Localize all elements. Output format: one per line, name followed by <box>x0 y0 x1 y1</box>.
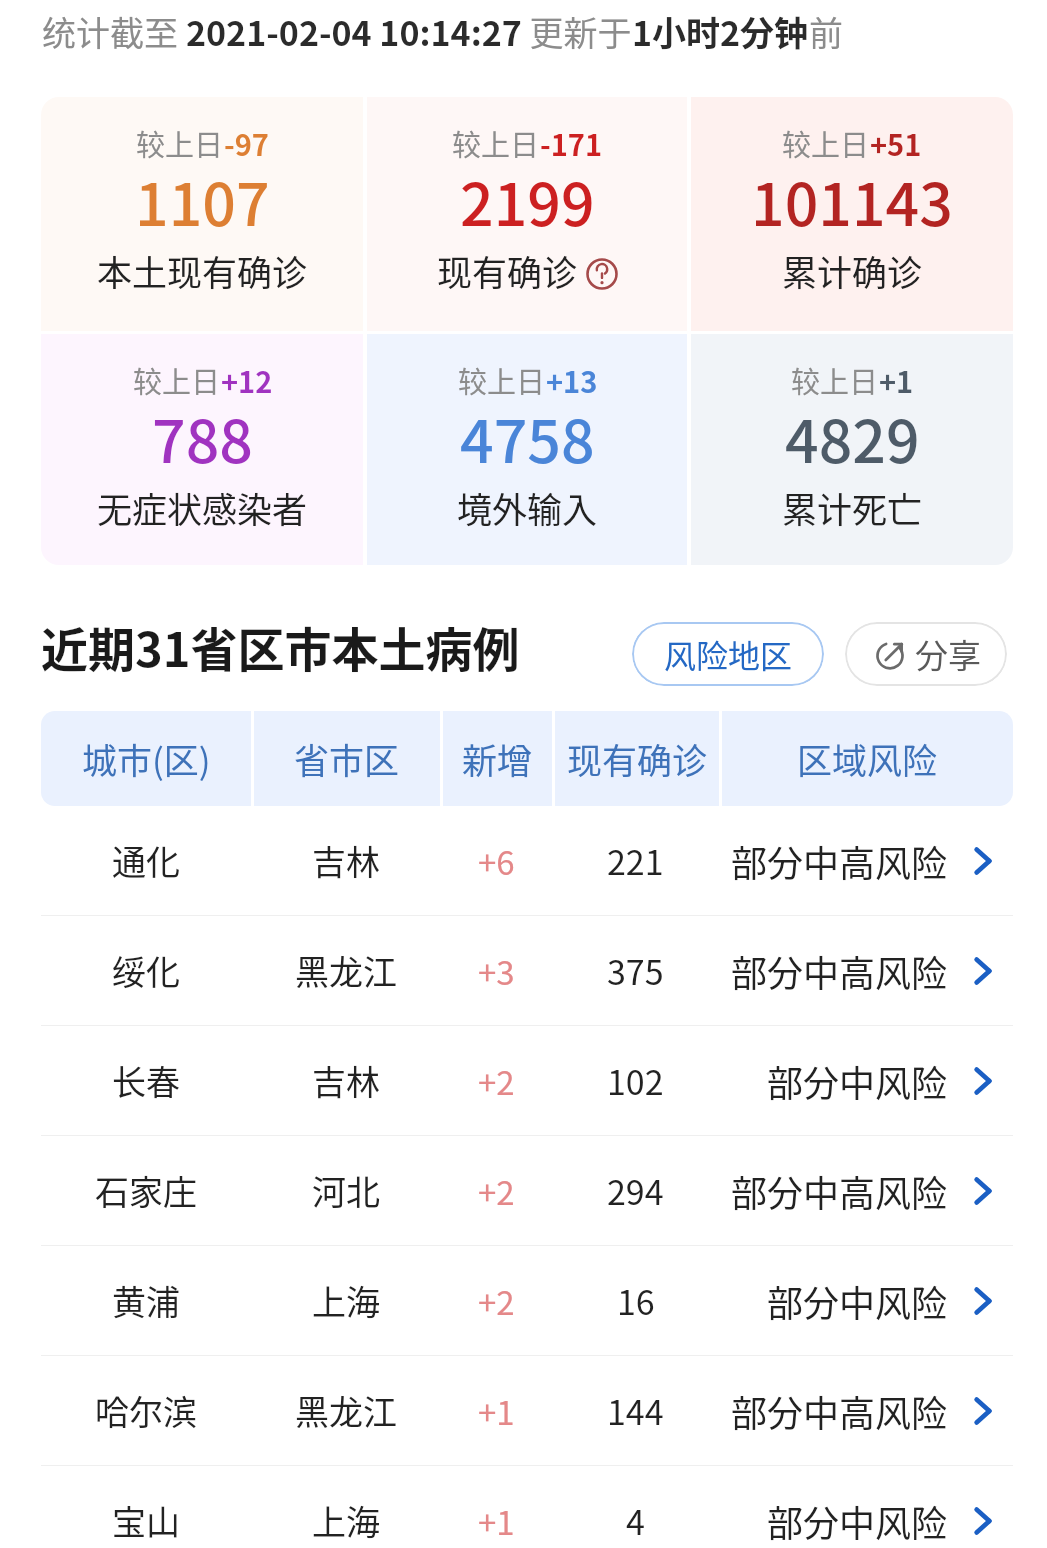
staticText: 上海 <box>312 1276 380 1325</box>
staticText: 较上日 <box>452 122 540 164</box>
staticText: 部分中高风险 <box>731 835 948 887</box>
staticText: 本土现有确诊 <box>97 245 308 296</box>
other: Share <box>872 636 908 672</box>
staticText: 144 <box>607 1386 664 1435</box>
staticText: 2021-02-04 10:14:27 <box>186 7 522 56</box>
staticText: 部分中高风险 <box>731 945 948 997</box>
staticText: 累计确诊 <box>782 245 923 296</box>
staticText: 4 <box>626 1496 645 1545</box>
staticText: 统计截至 <box>42 7 186 56</box>
staticText: 788 <box>152 395 253 480</box>
staticText: 黑龙江 <box>295 946 397 995</box>
button[interactable]: 较上日 <box>41 334 363 565</box>
staticText: 无症状感染者 <box>97 482 308 533</box>
staticText: 河北 <box>312 1166 380 1215</box>
button[interactable]: 通化 <box>41 806 1013 915</box>
staticText: 2199 <box>460 158 595 243</box>
staticText: 现有确诊 <box>437 245 578 296</box>
staticText: 部分中风险 <box>767 1275 948 1327</box>
staticText: 累计死亡 <box>782 482 923 533</box>
staticText: 1107 <box>135 158 270 243</box>
staticText: 现有确诊 <box>567 733 708 784</box>
button[interactable]: 风险地区 <box>632 622 824 686</box>
staticText: 石家庄 <box>95 1166 197 1215</box>
staticText: 更新于 <box>522 7 632 56</box>
staticText: 较上日 <box>791 359 879 401</box>
staticText: 294 <box>607 1166 664 1215</box>
staticText: 黑龙江 <box>295 1386 397 1435</box>
button[interactable]: Share <box>845 622 1007 686</box>
staticText: 4758 <box>460 395 595 480</box>
staticText: 1小时2分钟 <box>632 7 809 56</box>
staticText: 4829 <box>785 395 920 480</box>
button[interactable]: 较上日 <box>367 97 687 331</box>
staticText: 城市(区) <box>82 733 211 784</box>
staticText: +12 <box>221 359 273 401</box>
staticText: 宝山 <box>112 1496 180 1545</box>
staticText: -171 <box>540 122 603 164</box>
staticText: +13 <box>546 359 598 401</box>
staticText: 375 <box>607 946 664 995</box>
staticText: 上海 <box>312 1496 380 1545</box>
staticText: 较上日 <box>136 122 224 164</box>
staticText: 近期31省区市本土病例 <box>41 612 520 680</box>
staticText: 吉林 <box>312 1056 380 1105</box>
staticText: 省市区 <box>294 733 400 784</box>
staticText: +2 <box>478 1167 515 1215</box>
staticText: 16 <box>617 1276 655 1325</box>
staticText: -97 <box>224 122 269 164</box>
button[interactable]: 长春 <box>41 1026 1013 1135</box>
staticText: +3 <box>478 947 515 995</box>
staticText: 黄浦 <box>112 1276 180 1325</box>
staticText: 101143 <box>751 158 953 243</box>
button[interactable]: 绥化 <box>41 916 1013 1025</box>
button[interactable]: 较上日 <box>691 334 1013 565</box>
button[interactable]: 黄浦 <box>41 1246 1013 1355</box>
staticText: +1 <box>478 1497 515 1545</box>
staticText: 221 <box>607 836 664 885</box>
staticText: 区域风险 <box>797 733 938 784</box>
staticText: 较上日 <box>133 359 221 401</box>
staticText: 部分中高风险 <box>731 1165 948 1217</box>
button[interactable]: 宝山 <box>41 1466 1013 1548</box>
staticText: 较上日 <box>782 122 870 164</box>
staticText: 较上日 <box>458 359 546 401</box>
staticText: 部分中高风险 <box>731 1385 948 1437</box>
staticText: 绥化 <box>112 946 180 995</box>
button[interactable]: 石家庄 <box>41 1136 1013 1245</box>
staticText: 新增 <box>462 733 533 784</box>
staticText: 前 <box>809 7 843 56</box>
staticText: +6 <box>478 837 515 885</box>
staticText: 风险地区 <box>664 631 793 677</box>
button[interactable]: 较上日 <box>41 97 363 331</box>
staticText: +2 <box>478 1277 515 1325</box>
staticText: 通化 <box>112 836 180 885</box>
button[interactable]: 较上日 <box>691 97 1013 331</box>
staticText: 哈尔滨 <box>95 1386 197 1435</box>
staticText: 吉林 <box>312 836 380 885</box>
button[interactable]: 哈尔滨 <box>41 1356 1013 1465</box>
staticText: 102 <box>607 1056 664 1105</box>
staticText: +2 <box>478 1057 515 1105</box>
staticText: 部分中风险 <box>767 1495 948 1547</box>
staticText: 分享 <box>915 630 981 678</box>
staticText: 部分中风险 <box>767 1055 948 1107</box>
staticText: +1 <box>478 1387 515 1435</box>
staticText: +1 <box>879 359 914 401</box>
button[interactable]: 较上日 <box>367 334 687 565</box>
staticText: +51 <box>870 122 922 164</box>
other: Help <box>586 258 618 290</box>
staticText: 长春 <box>112 1056 180 1105</box>
staticText: 境外输入 <box>457 482 598 533</box>
